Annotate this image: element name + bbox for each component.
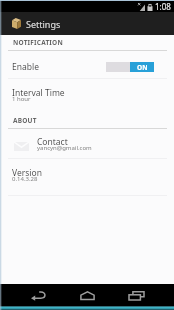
button[interactable]: Home	[68, 284, 106, 310]
button[interactable]: Contact	[0, 136, 174, 156]
staticText: Enable	[12, 61, 39, 73]
staticText: NOTIFICATION	[13, 38, 63, 47]
staticText: 1:08	[155, 1, 171, 12]
staticText: 0.14.3.28	[12, 175, 38, 183]
staticText: 1 hour	[12, 95, 31, 103]
staticText: yancyn@gmail.com	[37, 144, 92, 152]
staticText: ON	[137, 63, 148, 72]
button[interactable]: Version	[0, 167, 174, 187]
button[interactable]: Interval Time	[0, 87, 174, 107]
button[interactable]: Enable	[0, 61, 174, 73]
button[interactable]: Recents	[117, 284, 155, 310]
staticText: Settings	[26, 18, 61, 30]
staticText: Contact	[37, 136, 68, 148]
staticText: Interval Time	[12, 87, 65, 99]
button[interactable]: Back	[19, 284, 57, 310]
staticText: ABOUT	[13, 116, 37, 125]
staticText: Version	[12, 167, 42, 179]
